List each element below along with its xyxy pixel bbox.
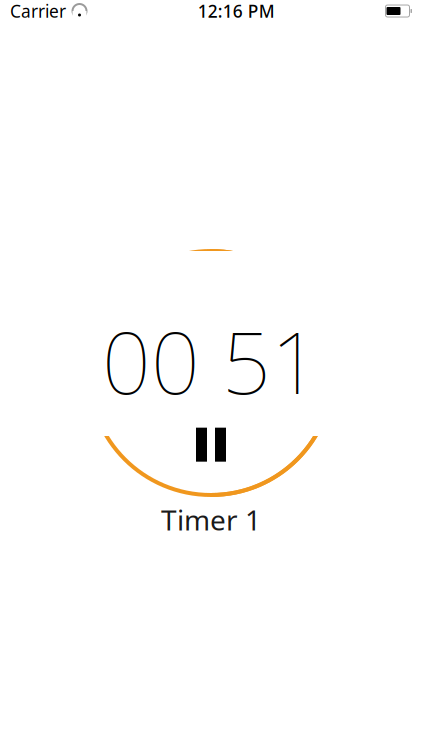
staticText: 00 51 bbox=[102, 304, 320, 418]
staticText: 12:16 PM bbox=[198, 0, 275, 22]
staticText: Timer 1 bbox=[161, 501, 261, 538]
button[interactable]: Pause Timer 1 bbox=[89, 251, 333, 495]
staticText: Carrier bbox=[10, 0, 66, 22]
